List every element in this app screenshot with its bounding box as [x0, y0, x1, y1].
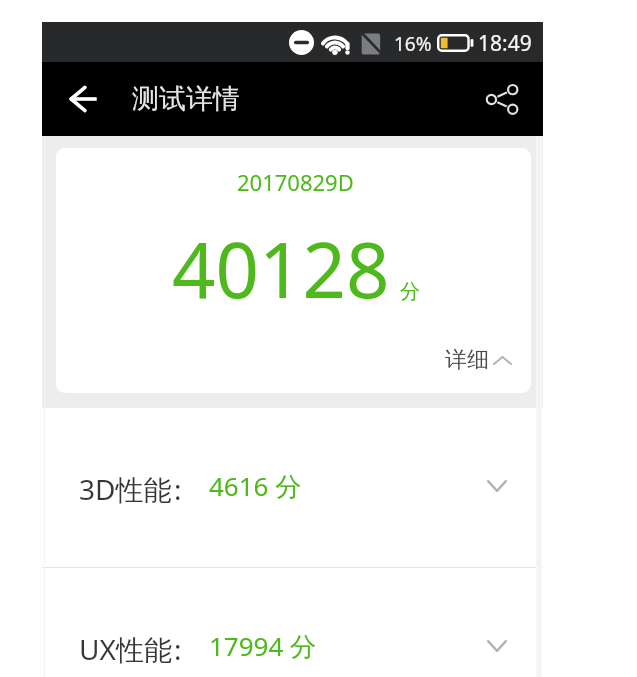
staticText: 4616 分	[209, 468, 302, 504]
button[interactable]: Back	[53, 69, 113, 129]
staticText: 分	[400, 279, 420, 304]
staticText: UX性能	[79, 630, 172, 668]
staticText: 18:49	[478, 29, 532, 58]
button[interactable]: 20170829D	[56, 148, 531, 393]
button[interactable]: Share	[472, 69, 532, 129]
staticText: 40128	[172, 217, 390, 321]
staticText: 测试详情	[132, 82, 240, 116]
button[interactable]: UX性能	[42, 568, 543, 677]
staticText: :	[174, 470, 182, 508]
staticText: 详细	[445, 346, 489, 374]
staticText: 3D性能	[79, 470, 172, 508]
staticText: 20170829D	[237, 167, 354, 197]
staticText: :	[174, 630, 182, 668]
button[interactable]: 详细	[445, 346, 512, 374]
staticText: 17994 分	[209, 628, 317, 664]
button[interactable]: 3D性能	[42, 408, 543, 567]
staticText: 16%	[394, 31, 432, 57]
